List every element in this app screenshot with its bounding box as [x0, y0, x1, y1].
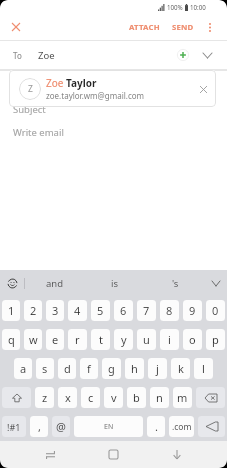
staticText: is — [111, 277, 119, 290]
button[interactable]: s — [36, 358, 54, 379]
button[interactable]: b — [127, 387, 146, 408]
staticText: !#1 — [7, 421, 21, 433]
button[interactable]: Backspace — [196, 387, 225, 408]
button[interactable]: Back — [145, 441, 208, 468]
staticText: 2 — [30, 303, 37, 318]
button[interactable]: . — [147, 416, 165, 437]
staticText: 1 — [8, 303, 15, 318]
staticText: g — [108, 361, 115, 376]
staticText: , — [38, 419, 41, 434]
button[interactable]: Add recipient — [170, 42, 196, 68]
staticText: j — [156, 361, 159, 376]
button[interactable]: and — [25, 270, 85, 296]
staticText: k — [178, 361, 184, 376]
staticText: 9 — [189, 303, 196, 318]
button[interactable]: 5 — [91, 300, 110, 321]
staticText: f — [87, 361, 91, 376]
staticText: .com — [172, 421, 192, 433]
button[interactable]: Expand recipients — [196, 44, 218, 66]
button[interactable]: y — [114, 329, 133, 350]
button[interactable]: 0 — [206, 300, 225, 321]
button[interactable]: More suggestions — [205, 270, 227, 296]
staticText: l — [202, 361, 205, 376]
button[interactable]: r — [68, 329, 87, 350]
button[interactable]: !#1 — [2, 416, 26, 437]
staticText: o — [189, 332, 196, 347]
staticText: 7 — [143, 303, 150, 318]
button[interactable]: z — [35, 387, 54, 408]
staticText: 4 — [74, 303, 81, 318]
staticText: b — [133, 390, 140, 405]
staticText: p — [212, 332, 219, 347]
button[interactable]: is — [85, 270, 145, 296]
button[interactable]: m — [173, 387, 192, 408]
button[interactable]: q — [2, 329, 20, 350]
button[interactable]: o — [183, 329, 202, 350]
button[interactable]: @ — [52, 416, 70, 437]
button[interactable]: EN — [74, 416, 143, 437]
button[interactable]: 6 — [114, 300, 133, 321]
button[interactable]: 's — [145, 270, 205, 296]
staticText: z — [42, 390, 48, 405]
staticText: 's — [172, 277, 179, 290]
button[interactable]: v — [104, 387, 123, 408]
staticText: w — [29, 332, 38, 347]
button[interactable]: Enter — [198, 416, 225, 437]
button[interactable]: e — [46, 329, 64, 350]
button[interactable]: j — [148, 358, 167, 379]
staticText: zoe.taylor.wm@gmail.com — [46, 90, 145, 101]
button[interactable]: Z — [9, 70, 216, 107]
button[interactable]: k — [171, 358, 190, 379]
staticText: s — [42, 361, 48, 376]
button[interactable]: , — [30, 416, 48, 437]
staticText: EN — [104, 422, 114, 432]
button[interactable]: x — [58, 387, 77, 408]
button[interactable]: Close — [0, 14, 31, 40]
staticText: i — [168, 332, 171, 347]
button[interactable]: t — [91, 329, 110, 350]
button[interactable]: d — [58, 358, 76, 379]
button[interactable]: 1 — [2, 300, 20, 321]
button[interactable]: More options — [201, 14, 219, 40]
button[interactable]: 2 — [24, 300, 42, 321]
button[interactable]: Remove recipient — [191, 77, 215, 101]
button[interactable]: c — [81, 387, 100, 408]
staticText: h — [131, 361, 138, 376]
button[interactable]: 7 — [137, 300, 156, 321]
button[interactable]: f — [80, 358, 98, 379]
button[interactable]: Shift — [2, 387, 31, 408]
staticText: @ — [56, 419, 66, 434]
button[interactable]: w — [24, 329, 42, 350]
button[interactable]: 9 — [183, 300, 202, 321]
button[interactable]: l — [194, 358, 213, 379]
button[interactable]: u — [137, 329, 156, 350]
button[interactable]: h — [125, 358, 144, 379]
staticText: Z — [28, 83, 33, 95]
staticText: 10:00 — [190, 3, 206, 11]
button[interactable]: Emoji and stickers — [0, 270, 24, 296]
button[interactable]: 4 — [68, 300, 87, 321]
button[interactable]: a — [14, 358, 32, 379]
button[interactable]: ATTACH — [125, 14, 164, 40]
button[interactable]: Recents — [19, 441, 82, 468]
button[interactable]: n — [150, 387, 169, 408]
staticText: To — [13, 50, 22, 61]
button[interactable]: Home — [82, 441, 145, 468]
staticText: c — [88, 390, 94, 405]
button[interactable]: i — [160, 329, 179, 350]
button[interactable]: g — [102, 358, 121, 379]
staticText: 6 — [120, 303, 127, 318]
staticText: u — [143, 332, 150, 347]
staticText: Zoe Taylor — [46, 76, 97, 90]
button[interactable]: p — [206, 329, 225, 350]
staticText: e — [52, 332, 59, 347]
button[interactable]: 3 — [46, 300, 64, 321]
staticText: x — [65, 390, 71, 405]
button[interactable]: SEND — [168, 14, 198, 40]
staticText: Write email — [13, 126, 64, 139]
button[interactable]: 8 — [160, 300, 179, 321]
staticText: and — [46, 277, 64, 290]
button[interactable]: .com — [169, 416, 194, 437]
staticText: ATTACH — [129, 22, 160, 33]
staticText: . — [155, 419, 158, 434]
